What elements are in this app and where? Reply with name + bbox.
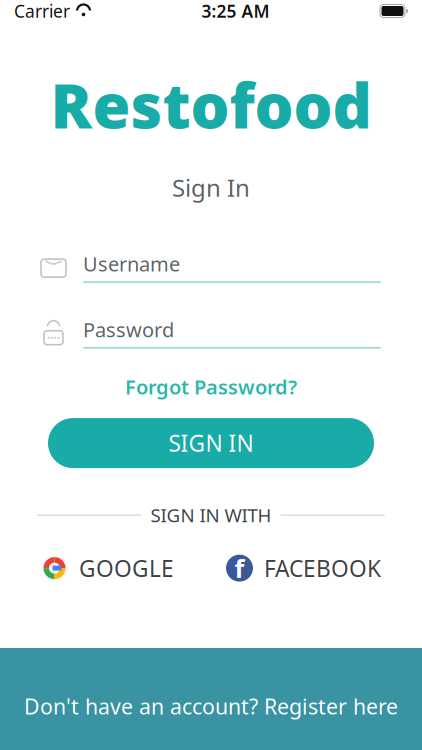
staticText: Don't have an account? Register here — [24, 692, 398, 720]
staticText: SIGN IN WITH — [150, 503, 271, 527]
button[interactable]: GOOGLE — [41, 553, 174, 583]
staticText: f — [234, 551, 244, 585]
staticText: FACEBOOK — [264, 553, 381, 583]
staticText: Forgot Password? — [125, 373, 297, 400]
button[interactable]: f — [226, 553, 381, 583]
staticText: GOOGLE — [79, 553, 174, 583]
staticText: Password — [83, 316, 174, 343]
staticText: Carrier — [14, 0, 70, 22]
button[interactable]: Forgot Password? — [115, 368, 307, 405]
staticText: Username — [83, 250, 180, 277]
staticText: 3:25 AM — [201, 0, 269, 22]
staticText: Sign In — [172, 171, 250, 203]
staticText: SIGN IN — [168, 428, 253, 458]
staticText: Restofood — [50, 64, 371, 145]
button[interactable]: SIGN IN — [48, 418, 374, 468]
